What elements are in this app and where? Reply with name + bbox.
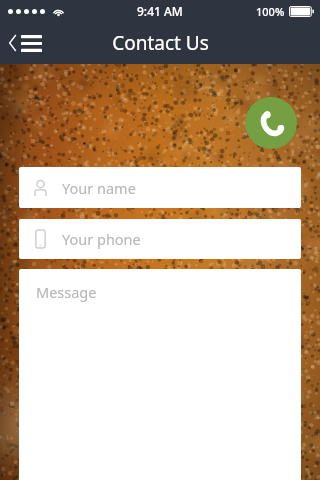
button[interactable]: Your phone xyxy=(19,219,301,259)
staticText: Your phone xyxy=(62,229,141,249)
button[interactable]: Call us xyxy=(245,97,297,149)
button[interactable]: Your name xyxy=(19,167,301,208)
staticText: Your name xyxy=(62,178,136,198)
staticText: Message xyxy=(36,282,97,302)
staticText: 9:41 AM xyxy=(137,3,183,19)
button[interactable]: Message xyxy=(19,269,301,480)
staticText: 100% xyxy=(256,4,285,19)
staticText: Contact Us xyxy=(112,30,209,56)
button[interactable]: Open navigation menu xyxy=(0,22,62,64)
